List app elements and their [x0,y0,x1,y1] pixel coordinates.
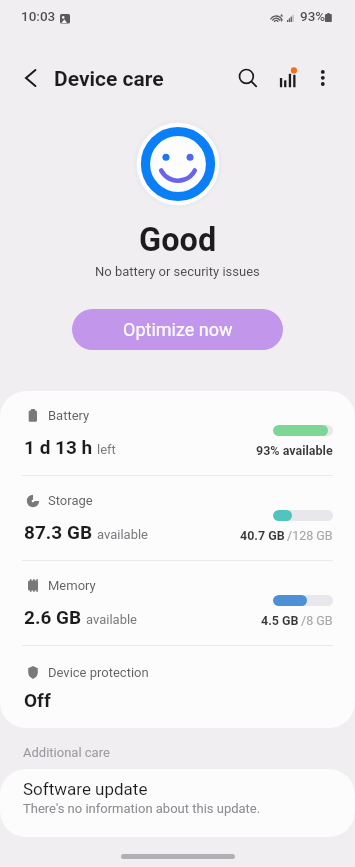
button[interactable]: Storage [0,476,355,560]
staticText: 1 d 13 h [24,436,93,458]
staticText: 2.6 GB [24,606,82,628]
staticText: 93% [300,8,326,24]
button[interactable]: Back [11,58,51,98]
staticText: /8 GB [301,613,333,628]
button[interactable]: Device protection [0,646,355,728]
button[interactable]: Battery [0,391,355,475]
button[interactable]: Usage statistics [268,58,308,98]
button[interactable]: Memory [0,561,355,645]
button[interactable]: More options [303,58,343,98]
staticText: Additional care [23,745,110,760]
staticText: Good [139,221,217,259]
button[interactable]: Optimize now [72,309,283,350]
staticText: left [97,442,116,457]
staticText: No battery or security issues [95,264,260,279]
staticText: 10:03 [21,8,56,24]
staticText: available [97,527,148,542]
button[interactable]: Software update [0,769,355,837]
staticText: Memory [48,578,96,593]
staticText: Off [24,689,51,711]
staticText: 93% available [256,443,333,458]
staticText: Device protection [48,665,149,680]
staticText: Software update [23,779,148,799]
staticText: available [86,612,137,627]
staticText: There's no information about this update… [23,801,261,816]
staticText: Device care [54,67,164,92]
staticText: 87.3 GB [24,521,93,543]
staticText: 40.7 GB [240,528,285,543]
staticText: Optimize now [123,319,233,340]
staticText: Storage [48,493,93,508]
staticText: 4.5 GB [261,613,299,628]
staticText: Battery [48,408,90,423]
staticText: /128 GB [287,528,333,543]
button[interactable]: Search [227,58,267,98]
